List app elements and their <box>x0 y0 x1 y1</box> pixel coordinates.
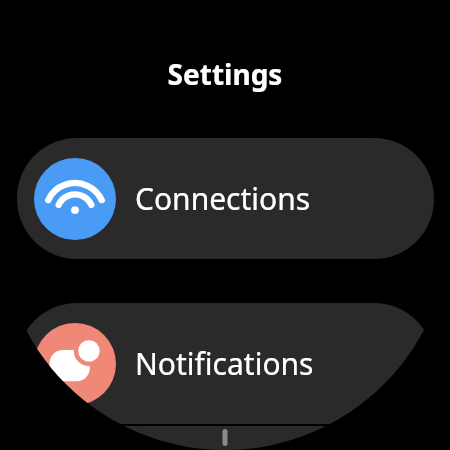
other: Notifications <box>34 323 116 405</box>
staticText: Notifications <box>135 343 314 384</box>
other: Connections <box>34 158 116 240</box>
button[interactable]: Connections <box>17 138 434 259</box>
button[interactable] <box>17 426 434 450</box>
button[interactable]: Notifications <box>17 303 434 424</box>
staticText: Settings <box>0 55 450 450</box>
staticText: Connections <box>135 178 311 219</box>
